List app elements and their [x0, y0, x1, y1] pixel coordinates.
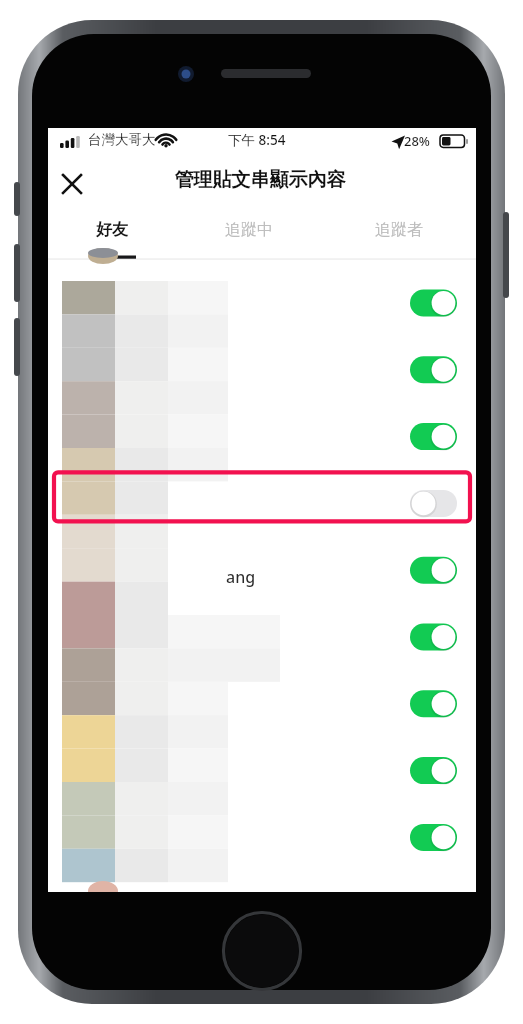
staticText: 管理貼文串顯示內容: [46, 168, 474, 198]
staticText: 台灣大哥大: [88, 131, 156, 148]
button[interactable]: [48, 738, 476, 805]
button[interactable]: [48, 337, 476, 404]
button[interactable]: [48, 404, 476, 471]
button[interactable]: Show posts on: [406, 285, 461, 321]
staticText: ang: [226, 566, 256, 588]
button[interactable]: Show posts on: [406, 619, 461, 655]
button[interactable]: Close: [52, 164, 92, 204]
button[interactable]: [48, 537, 476, 604]
button[interactable]: [48, 270, 476, 337]
button[interactable]: 追蹤中: [225, 220, 273, 240]
button[interactable]: Show posts on: [406, 819, 461, 855]
staticText: 下午 8:54: [228, 131, 286, 149]
button[interactable]: Show posts on: [406, 552, 461, 588]
button[interactable]: 好友: [96, 220, 128, 240]
staticText: 追蹤者: [375, 220, 423, 240]
staticText: 28%: [404, 132, 430, 150]
button[interactable]: Show posts off: [406, 485, 461, 521]
button[interactable]: [48, 804, 476, 871]
button[interactable]: [48, 671, 476, 738]
button[interactable]: Show posts on: [406, 686, 461, 722]
button[interactable]: [48, 604, 476, 671]
button[interactable]: Show posts on: [406, 753, 461, 789]
staticText: 好友: [96, 220, 128, 240]
button[interactable]: Show posts on: [406, 352, 461, 388]
button[interactable]: [48, 470, 476, 537]
button[interactable]: Show posts on: [406, 419, 461, 455]
staticText: 追蹤中: [225, 220, 273, 240]
button[interactable]: 追蹤者: [375, 220, 423, 240]
